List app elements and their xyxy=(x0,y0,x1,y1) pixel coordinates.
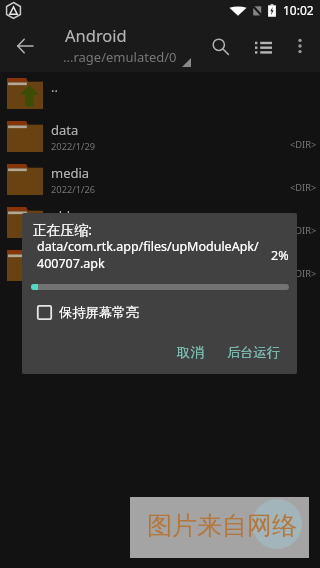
button[interactable]: 保持屏幕常亮 xyxy=(33,300,143,325)
staticText: 2022/1/20 xyxy=(51,226,96,239)
staticText: ...rage/emulated/0 xyxy=(63,48,177,66)
staticText: 2022/1/18 xyxy=(51,269,96,282)
staticText: 2022/1/26 xyxy=(51,183,96,196)
staticText: <DIR> xyxy=(290,267,317,280)
button[interactable]: Search xyxy=(200,26,240,66)
staticText: 图片来自网络 xyxy=(147,510,297,541)
staticText: misc xyxy=(51,250,79,268)
staticText: obb xyxy=(51,207,75,225)
button[interactable]: 取消 xyxy=(169,339,212,366)
button[interactable]: View mode xyxy=(243,26,283,66)
staticText: 后台运行 xyxy=(227,344,281,361)
staticText: data xyxy=(51,121,79,139)
staticText: <DIR> xyxy=(290,138,317,151)
staticText: media xyxy=(51,164,90,182)
staticText: <DIR> xyxy=(290,224,317,237)
button[interactable]: data xyxy=(0,115,320,158)
button[interactable]: .. xyxy=(0,72,320,115)
staticText: .. xyxy=(51,78,58,96)
staticText: 保持屏幕常亮 xyxy=(59,304,139,321)
staticText: 取消 xyxy=(177,344,204,361)
button[interactable]: 后台运行 xyxy=(219,339,289,366)
button[interactable]: misc xyxy=(0,244,320,287)
staticText: data/com.rtk.app/files/upModuleApk/40070… xyxy=(37,238,262,272)
staticText: Android xyxy=(65,24,127,46)
staticText: 2% xyxy=(271,247,289,264)
staticText: 2022/1/29 xyxy=(51,140,96,153)
staticText: 10:02 xyxy=(283,2,314,18)
button[interactable]: media xyxy=(0,158,320,201)
button[interactable]: More options xyxy=(283,29,317,63)
staticText: 正在压缩: xyxy=(33,220,92,239)
staticText: <DIR> xyxy=(290,181,317,194)
button[interactable]: obb xyxy=(0,201,320,244)
button[interactable]: Back xyxy=(0,21,50,71)
